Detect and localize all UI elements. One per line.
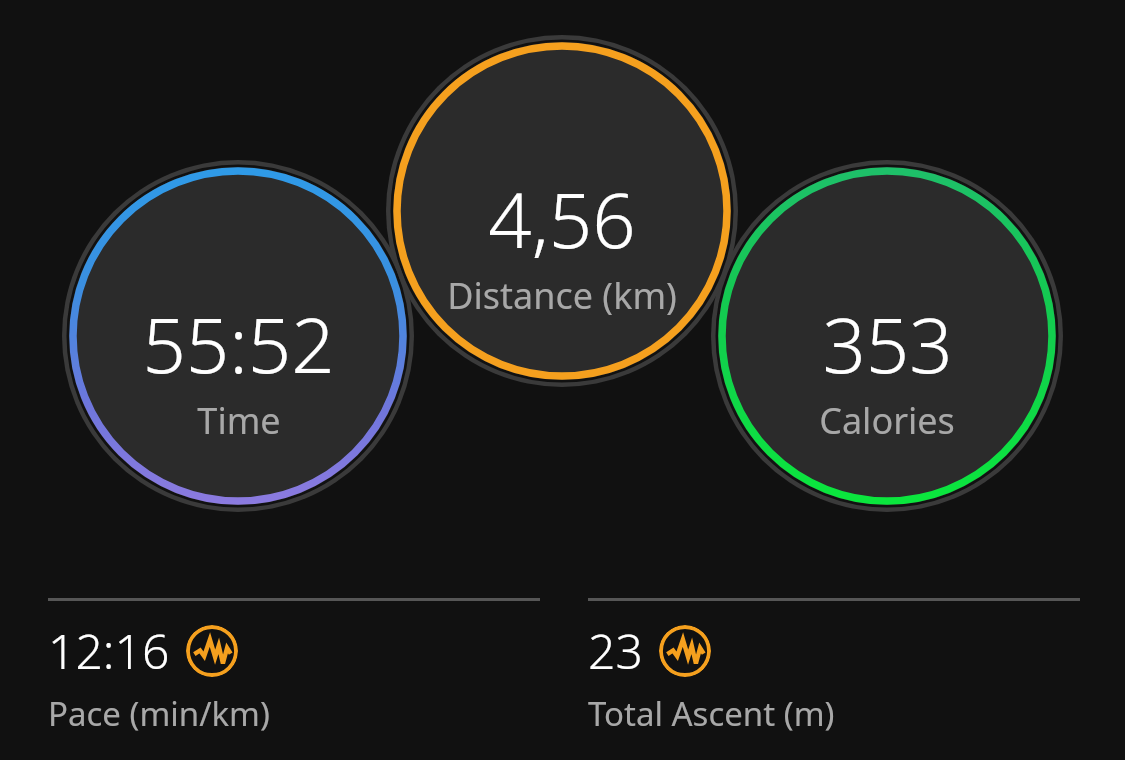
button[interactable]: 4,56 [386, 35, 738, 387]
staticText: 353 [822, 292, 953, 396]
button[interactable]: 23 [588, 598, 1080, 736]
button[interactable]: 353 [711, 160, 1063, 512]
staticText: Time [197, 396, 281, 445]
staticText: Pace (min/km) [48, 691, 270, 736]
staticText: Total Ascent (m) [588, 691, 835, 736]
button[interactable]: Total Ascent (m) [659, 625, 711, 677]
staticText: 55:52 [142, 292, 335, 396]
button[interactable]: 12:16 [48, 598, 540, 736]
staticText: 12:16 [48, 618, 170, 683]
staticText: 4,56 [488, 167, 636, 271]
staticText: 23 [588, 618, 643, 683]
staticText: Calories [819, 396, 955, 445]
staticText: Distance (km) [447, 271, 677, 320]
button[interactable]: Pace (min/km) [186, 625, 238, 677]
button[interactable]: 55:52 [62, 160, 414, 512]
